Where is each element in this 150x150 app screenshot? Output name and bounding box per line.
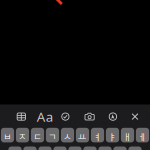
button[interactable]: Markup [107,111,119,123]
button[interactable]: ㄴ [23,146,37,150]
staticText: Aa [37,108,53,125]
button[interactable]: ㅓ [98,146,112,150]
button[interactable]: ㅏ [113,146,127,150]
button[interactable]: Checklist [59,111,71,123]
button[interactable]: ㅎ [68,146,82,150]
button[interactable]: ㅐ [121,128,134,142]
button[interactable]: ㄷ [31,128,44,142]
staticText: ㅑ [108,129,117,143]
staticText: ㅐ [123,129,132,143]
staticText: ㅅ [63,129,72,143]
staticText: ㄷ [33,129,42,143]
button[interactable]: ㅣ [128,146,142,150]
button[interactable]: Hide keyboard [132,113,138,120]
button[interactable]: ㅑ [106,128,119,142]
button[interactable]: ㅈ [16,128,29,142]
button[interactable]: ㅛ [76,128,89,142]
staticText: ㅈ [18,129,27,143]
button[interactable]: ㅁ [8,146,22,150]
button[interactable]: Aa [34,110,56,124]
staticText: ㅂ [3,129,12,143]
staticText: ㅕ [93,129,102,143]
button[interactable]: ㅕ [91,128,104,142]
button[interactable]: ㅂ [1,128,14,142]
button[interactable]: ㄱ [46,128,59,142]
button[interactable]: ㅅ [61,128,74,142]
staticText: ㅔ [138,129,147,143]
button[interactable]: ㄹ [53,146,67,150]
staticText: ㅛ [78,129,87,143]
button[interactable]: ㅇ [38,146,52,150]
button[interactable]: Insert photo [84,111,96,123]
button[interactable]: ㅗ [83,146,97,150]
button[interactable]: ㅔ [136,128,149,142]
button[interactable]: Table [15,111,27,123]
staticText: ㄱ [48,129,57,143]
